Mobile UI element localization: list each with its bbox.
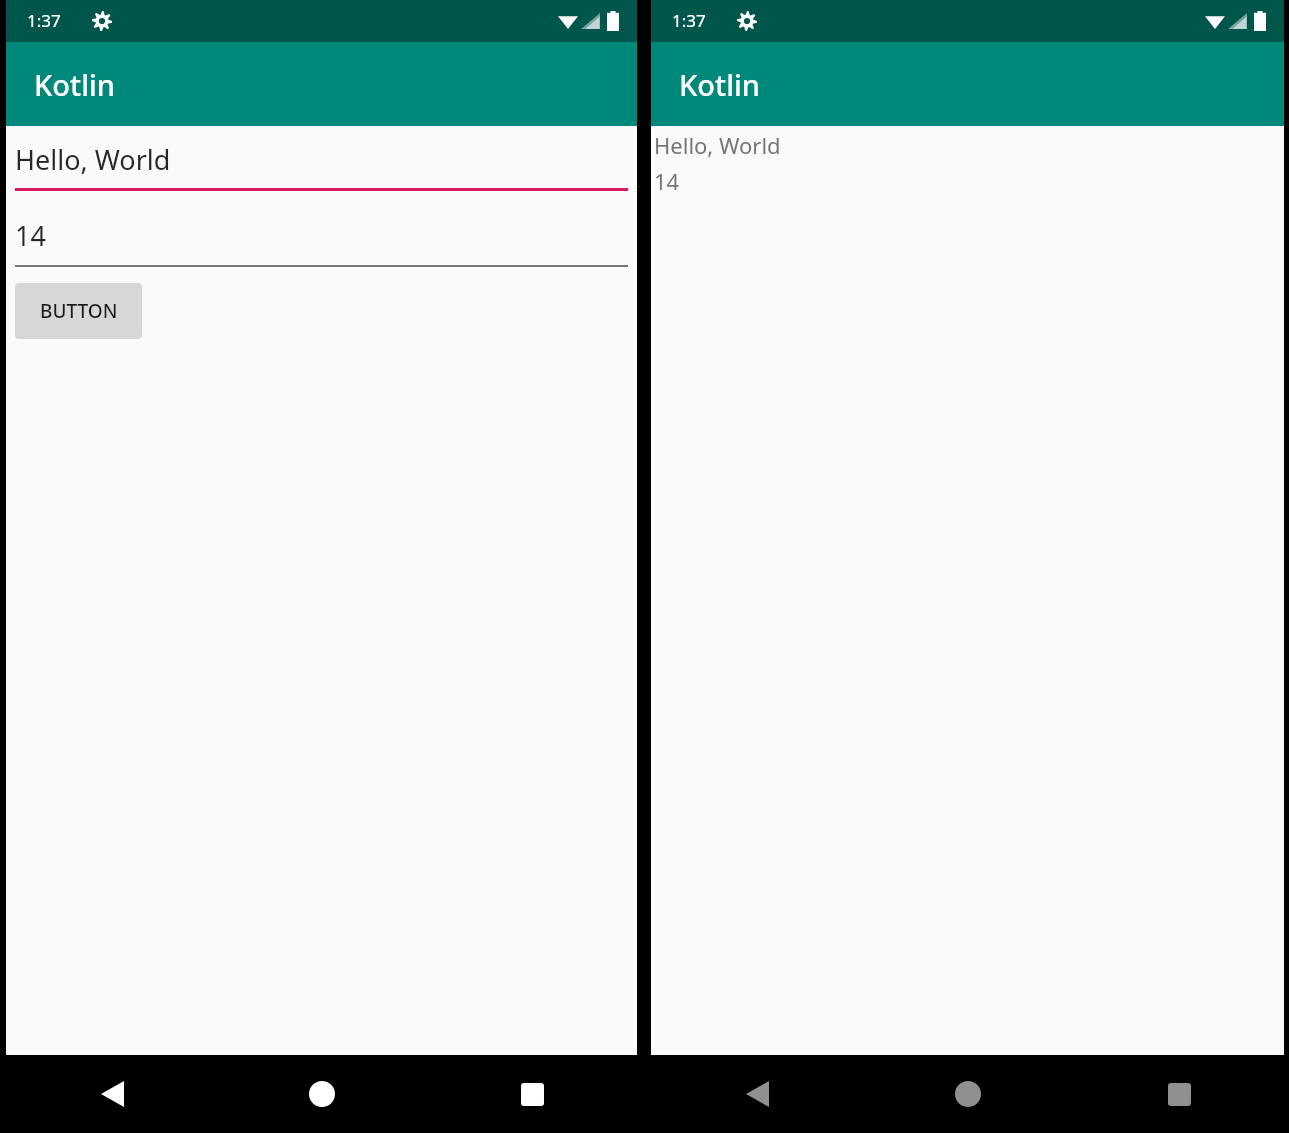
button[interactable]: BUTTON — [15, 283, 142, 339]
other: Settings — [737, 11, 757, 31]
staticText: 1:37 — [672, 9, 706, 32]
staticText: Hello, World — [15, 141, 171, 178]
other: Settings — [92, 11, 112, 31]
button[interactable]: Back — [82, 1064, 142, 1124]
button[interactable]: Hello, World — [15, 141, 628, 191]
button[interactable]: Home — [292, 1064, 352, 1124]
staticText: 14 — [654, 166, 680, 196]
button[interactable]: 14 — [15, 217, 628, 267]
button[interactable]: Recent apps — [502, 1064, 562, 1124]
staticText: 14 — [15, 217, 46, 254]
button[interactable]: Home — [938, 1064, 998, 1124]
staticText: Kotlin — [34, 65, 115, 104]
button[interactable]: Recent apps — [1149, 1064, 1209, 1124]
staticText: BUTTON — [40, 298, 118, 324]
button[interactable]: Back — [727, 1064, 787, 1124]
staticText: 1:37 — [27, 9, 61, 32]
staticText: Kotlin — [679, 65, 760, 104]
staticText: Hello, World — [654, 130, 781, 160]
